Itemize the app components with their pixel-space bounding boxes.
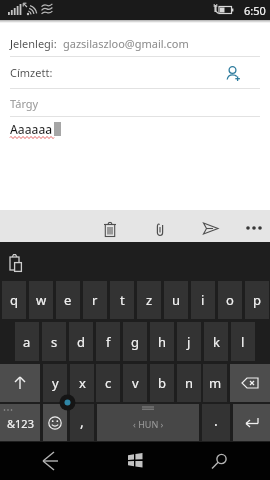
button[interactable]: f bbox=[96, 322, 120, 361]
button[interactable]: Jelenlegi: bbox=[0, 30, 270, 56]
staticText: g bbox=[131, 333, 139, 351]
button[interactable]: r bbox=[83, 281, 107, 319]
staticText: t bbox=[120, 291, 125, 309]
staticText: d bbox=[77, 333, 85, 351]
button[interactable] bbox=[202, 222, 219, 235]
staticText: , bbox=[80, 412, 84, 431]
staticText: gazsilaszloo@gmail.com bbox=[63, 36, 189, 51]
staticText: 6:50 bbox=[244, 3, 266, 18]
staticText: s bbox=[51, 333, 58, 351]
staticText: m bbox=[209, 374, 222, 392]
button[interactable]: e bbox=[56, 281, 80, 319]
button[interactable] bbox=[0, 364, 40, 402]
button[interactable] bbox=[154, 222, 166, 238]
staticText: u bbox=[172, 291, 181, 309]
button[interactable] bbox=[43, 404, 67, 441]
button[interactable]: a bbox=[15, 322, 39, 361]
staticText: l bbox=[241, 333, 245, 351]
staticText: e bbox=[64, 291, 72, 309]
button[interactable] bbox=[38, 450, 62, 472]
button[interactable]: u bbox=[164, 281, 188, 319]
button[interactable]: Címzett: bbox=[0, 58, 270, 87]
button[interactable]: i bbox=[191, 281, 215, 319]
button[interactable]: v bbox=[123, 364, 147, 402]
button[interactable]: Tárgy bbox=[0, 90, 270, 116]
button[interactable]: t bbox=[110, 281, 134, 319]
button[interactable]: , bbox=[70, 404, 94, 441]
staticText: v bbox=[132, 374, 139, 392]
button[interactable]: c bbox=[96, 364, 120, 402]
staticText: Jelenlegi: bbox=[10, 36, 57, 51]
button[interactable]: k bbox=[204, 322, 228, 361]
button[interactable]: . bbox=[202, 404, 230, 441]
button[interactable]: d bbox=[69, 322, 93, 361]
staticText: i bbox=[201, 291, 205, 309]
button[interactable] bbox=[246, 224, 262, 232]
button[interactable]: y bbox=[43, 364, 67, 402]
staticText: x bbox=[79, 374, 86, 392]
button[interactable]: x bbox=[70, 364, 94, 402]
button[interactable]: b bbox=[150, 364, 174, 402]
staticText: b bbox=[158, 374, 166, 392]
staticText: &123 bbox=[7, 416, 34, 431]
staticText: y bbox=[52, 374, 59, 392]
button[interactable] bbox=[224, 65, 242, 83]
staticText: p bbox=[253, 291, 261, 309]
button[interactable] bbox=[103, 221, 117, 238]
button[interactable] bbox=[208, 448, 232, 472]
staticText: a bbox=[23, 333, 31, 351]
button[interactable]: h bbox=[150, 322, 174, 361]
staticText: Aaaaaa bbox=[10, 121, 53, 137]
button[interactable]: o bbox=[218, 281, 242, 319]
staticText: w bbox=[36, 291, 47, 309]
button[interactable] bbox=[9, 253, 24, 273]
staticText: h bbox=[158, 333, 167, 351]
staticText: ‹ HUN › bbox=[133, 418, 164, 430]
button[interactable]: j bbox=[177, 322, 201, 361]
staticText: f bbox=[106, 333, 111, 351]
staticText: o bbox=[226, 291, 234, 309]
staticText: c bbox=[105, 374, 112, 392]
button[interactable]: l bbox=[231, 322, 255, 361]
staticText: j bbox=[187, 333, 191, 351]
staticText: r bbox=[92, 291, 98, 309]
button[interactable] bbox=[233, 404, 270, 441]
button[interactable]: q bbox=[2, 281, 26, 319]
staticText: q bbox=[10, 291, 18, 309]
staticText: n bbox=[185, 374, 194, 392]
staticText: Címzett: bbox=[10, 65, 53, 80]
staticText: Tárgy bbox=[10, 96, 39, 111]
button[interactable] bbox=[127, 452, 143, 468]
staticText: . bbox=[214, 411, 218, 430]
button[interactable]: ‹ HUN › bbox=[97, 404, 199, 441]
staticText: k bbox=[213, 333, 220, 351]
button[interactable]: s bbox=[42, 322, 66, 361]
button[interactable]: p bbox=[245, 281, 269, 319]
button[interactable]: g bbox=[123, 322, 147, 361]
button[interactable]: n bbox=[177, 364, 201, 402]
button[interactable]: z bbox=[137, 281, 161, 319]
staticText: z bbox=[146, 291, 153, 309]
button[interactable] bbox=[230, 364, 270, 402]
button[interactable]: &123 bbox=[0, 404, 40, 441]
button[interactable]: w bbox=[29, 281, 53, 319]
button[interactable]: m bbox=[203, 364, 227, 402]
